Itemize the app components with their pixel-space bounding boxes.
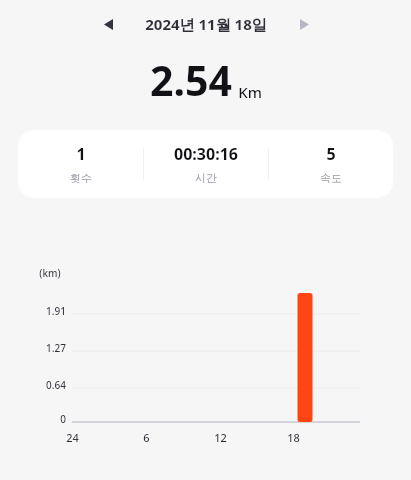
- staticText: 0.64: [46, 378, 66, 392]
- staticText: 5: [326, 143, 336, 165]
- staticText: (km): [39, 266, 61, 280]
- staticText: Km: [238, 82, 262, 102]
- staticText: 2.54: [150, 52, 232, 108]
- staticText: 1.91: [46, 304, 66, 318]
- button[interactable]: 1: [18, 130, 143, 198]
- staticText: 시간: [195, 171, 217, 185]
- staticText: 속도: [320, 171, 342, 185]
- staticText: 1.27: [46, 341, 66, 355]
- button[interactable]: Previous day: [93, 9, 123, 39]
- staticText: 00:30:16: [174, 143, 238, 165]
- button[interactable]: 5: [269, 130, 393, 198]
- staticText: 1: [76, 143, 86, 165]
- staticText: 2024년 11월 18일: [145, 14, 267, 34]
- staticText: 24: [66, 430, 79, 445]
- button[interactable]: Next day: [289, 9, 319, 39]
- staticText: 횟수: [70, 171, 92, 185]
- staticText: 12: [214, 430, 227, 445]
- button[interactable]: 00:30:16: [144, 130, 268, 198]
- staticText: 6: [143, 430, 150, 445]
- staticText: 0: [60, 412, 66, 426]
- staticText: 18: [287, 430, 300, 445]
